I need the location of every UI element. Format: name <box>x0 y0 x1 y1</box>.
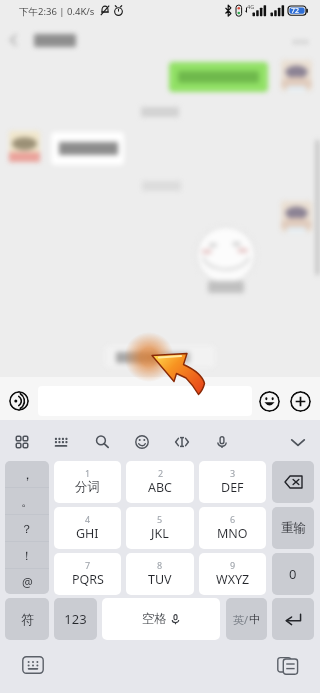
staticText: 4G <box>247 3 255 10</box>
button[interactable]: 0 <box>272 553 314 595</box>
staticText: 4 <box>85 513 91 525</box>
staticText: ！ <box>21 548 33 563</box>
button[interactable]: 5 <box>126 507 194 549</box>
staticText: TUV <box>148 571 172 588</box>
staticText: 重输 <box>281 520 306 536</box>
staticText: WXYZ <box>216 571 250 588</box>
staticText: DEF <box>221 479 244 496</box>
button[interactable]: 8 <box>126 553 194 595</box>
button[interactable]: 123 <box>54 598 97 640</box>
button[interactable]: More <box>290 391 311 412</box>
button[interactable]: Emoji <box>259 391 280 412</box>
staticText: JKL <box>151 525 169 542</box>
button[interactable]: Clipboard <box>277 655 298 675</box>
button[interactable]: ！ <box>5 542 49 568</box>
button[interactable]: Apps <box>9 429 35 455</box>
staticText: 。 <box>21 493 34 509</box>
button[interactable]: Switch keyboard <box>22 656 44 674</box>
staticText: 分词 <box>75 479 100 495</box>
button[interactable]: @ <box>5 569 49 594</box>
staticText: 123 <box>64 610 87 628</box>
button[interactable]: 空格 <box>102 598 220 640</box>
staticText: @ <box>22 574 33 590</box>
button[interactable]: 英/ <box>226 598 267 640</box>
button[interactable]: 3 <box>199 461 266 503</box>
staticText: 72 <box>291 6 300 16</box>
staticText: ？ <box>21 521 33 536</box>
button[interactable]: 。 <box>5 488 49 514</box>
staticText: 8 <box>157 559 163 571</box>
button[interactable] <box>38 386 252 416</box>
staticText: ， <box>21 466 34 482</box>
staticText: 空格 <box>142 611 167 627</box>
button[interactable]: Voice input <box>9 391 29 411</box>
button[interactable]: 6 <box>199 507 266 549</box>
staticText: ABC <box>148 479 173 496</box>
button[interactable]: 7 <box>54 553 121 595</box>
staticText: 6 <box>230 513 236 525</box>
button[interactable]: ？ <box>5 515 49 541</box>
button[interactable]: 2 <box>126 461 194 503</box>
button[interactable]: Search <box>89 429 115 455</box>
staticText: GHI <box>76 525 99 542</box>
staticText: 9 <box>230 559 236 571</box>
staticText: 2 <box>158 467 164 479</box>
button[interactable]: Keyboard layout <box>48 429 74 455</box>
staticText: 7 <box>85 559 91 571</box>
staticText: 1 <box>85 467 91 479</box>
button[interactable]: Voice <box>209 429 235 455</box>
button[interactable]: ， <box>5 461 49 487</box>
staticText: MNO <box>217 525 248 542</box>
button[interactable]: Backspace <box>272 461 314 503</box>
button[interactable]: Hide keyboard <box>285 429 311 455</box>
button[interactable]: 1 <box>54 461 121 503</box>
button[interactable]: 9 <box>199 553 266 595</box>
staticText: 中 <box>249 612 260 626</box>
button[interactable]: 4 <box>54 507 121 549</box>
button[interactable]: Emoji <box>129 429 155 455</box>
staticText: 英/ <box>233 612 249 627</box>
staticText: 下午2:36 | 0.4K/s <box>19 5 95 18</box>
button[interactable]: 符 <box>5 598 49 640</box>
staticText: 符 <box>21 611 34 627</box>
button[interactable]: Text tools <box>169 429 195 455</box>
button[interactable]: Enter <box>272 598 314 640</box>
staticText: 3 <box>230 467 236 479</box>
staticText: 0 <box>289 565 297 583</box>
staticText: 5 <box>157 513 163 525</box>
staticText: PQRS <box>72 571 104 588</box>
button[interactable]: 重输 <box>272 507 314 549</box>
